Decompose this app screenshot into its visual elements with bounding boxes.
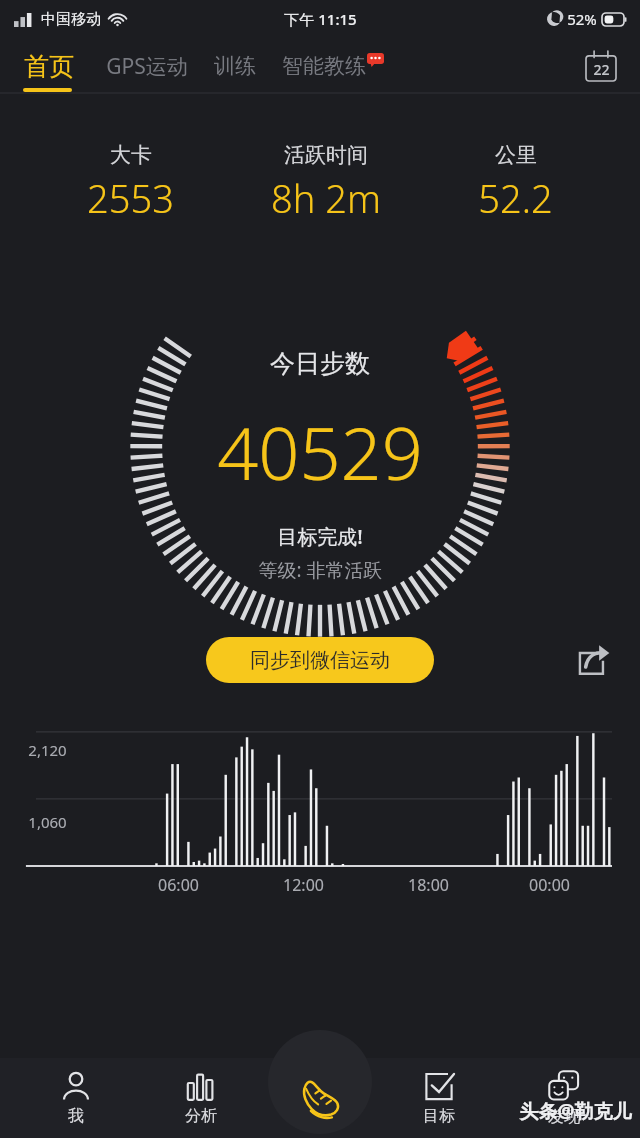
button[interactable]: Steps — [277, 1058, 363, 1138]
staticText: 00:00 — [529, 874, 570, 896]
button[interactable]: 目标 — [391, 1065, 487, 1132]
button[interactable]: 智能教练 — [280, 47, 386, 85]
staticText: 发现 — [548, 1107, 580, 1127]
staticText: 活跃时间 — [284, 142, 368, 168]
staticText: 12:00 — [283, 874, 324, 896]
button[interactable]: 我 — [28, 1065, 124, 1132]
staticText: 等级: 非常活跃 — [258, 557, 383, 583]
staticText: 公里 — [495, 142, 537, 168]
button[interactable]: 公里 — [468, 140, 563, 226]
staticText: 智能教练 — [282, 53, 366, 79]
staticText: 下午 11:15 — [284, 9, 357, 29]
button[interactable]: 分析 — [153, 1065, 249, 1132]
button[interactable]: 活跃时间 — [261, 140, 391, 226]
button[interactable]: Share — [572, 638, 616, 682]
staticText: 训练 — [214, 53, 256, 79]
staticText: 52% — [567, 9, 597, 29]
staticText: 18:00 — [408, 874, 449, 896]
staticText: 22 — [593, 60, 610, 79]
staticText: 分析 — [185, 1106, 217, 1126]
button[interactable]: 首页 — [22, 45, 76, 88]
staticText: 40529 — [217, 403, 423, 501]
button[interactable]: 发现 — [516, 1064, 612, 1133]
staticText: 今日步数 — [270, 348, 370, 379]
staticText: 同步到微信运动 — [250, 648, 390, 673]
button[interactable]: 同步到微信运动 — [206, 637, 434, 683]
staticText: 头条@勒克儿 — [519, 1098, 632, 1124]
staticText: GPS运动 — [106, 52, 188, 81]
staticText: 我 — [68, 1106, 84, 1126]
staticText: 52.2 — [478, 172, 553, 224]
staticText: 06:00 — [158, 874, 199, 896]
staticText: 8h 2m — [271, 172, 381, 224]
staticText: 目标 — [423, 1106, 455, 1126]
button[interactable]: 大卡 — [77, 140, 184, 226]
staticText: 大卡 — [110, 142, 152, 168]
staticText: 目标完成! — [277, 523, 363, 550]
staticText: 中国移动 — [41, 10, 101, 29]
button[interactable]: Calendar — [580, 45, 622, 87]
staticText: 2,120 — [28, 740, 67, 760]
staticText: 首页 — [24, 51, 74, 82]
staticText: 1,060 — [28, 812, 67, 832]
staticText: 2553 — [87, 172, 174, 224]
button[interactable]: 训练 — [212, 47, 258, 85]
button[interactable]: GPS运动 — [104, 46, 190, 87]
